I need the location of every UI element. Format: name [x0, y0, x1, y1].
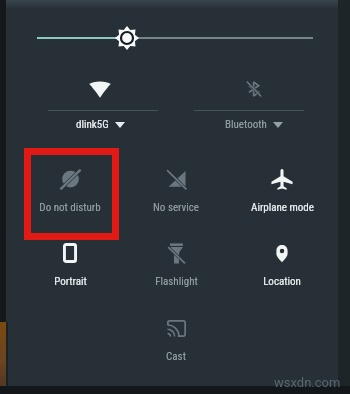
button[interactable]: Bluetooth	[199, 77, 309, 133]
button[interactable]: Airplane mode	[230, 168, 334, 226]
staticText: Bluetooth	[225, 118, 267, 131]
button[interactable]: Brightness	[30, 24, 320, 52]
button[interactable]: Do not disturb	[18, 168, 122, 226]
staticText: dlink5G	[76, 118, 109, 131]
button[interactable]: dlink5G	[45, 77, 155, 133]
button[interactable]: Flashlight	[124, 242, 228, 300]
button[interactable]: Location	[230, 242, 334, 300]
staticText: Location	[263, 275, 301, 288]
button[interactable]: No service	[124, 168, 228, 226]
button[interactable]: Cast	[124, 317, 228, 375]
staticText: Airplane mode	[251, 201, 314, 214]
staticText: Cast	[166, 350, 186, 363]
staticText: wsxdn.com	[274, 375, 341, 390]
staticText: Flashlight	[155, 275, 198, 288]
staticText: Portrait	[54, 275, 87, 288]
staticText: Do not disturb	[39, 201, 101, 214]
staticText: No service	[153, 201, 199, 214]
button[interactable]: Portrait	[18, 242, 122, 300]
